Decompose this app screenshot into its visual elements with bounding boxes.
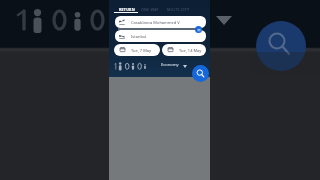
staticText: Tue, 7 May (131, 48, 152, 53)
staticText: MULTI-CITY (167, 7, 190, 12)
button[interactable]: Istanbul (115, 30, 206, 42)
button[interactable]: Tue, 14 May (162, 44, 206, 56)
button[interactable]: MULTI-CITY (167, 7, 190, 12)
button[interactable]: Casablanca Mohammed V (115, 16, 206, 28)
staticText: Economy (161, 62, 179, 68)
button[interactable] (113, 60, 155, 70)
staticText: Istanbul (131, 34, 147, 39)
staticText: Tue, 14 May (179, 48, 202, 53)
button[interactable]: Tue, 7 May (114, 44, 160, 56)
staticText: RETURN (119, 7, 135, 12)
button[interactable]: ONE WAY (141, 7, 159, 12)
button[interactable]: RETURN (119, 7, 143, 12)
staticText: Casablanca Mohammed V (131, 20, 180, 25)
staticText: ONE WAY (141, 7, 159, 12)
button[interactable]: Economy (161, 62, 193, 70)
button[interactable]: Swap origin and destination (195, 26, 202, 33)
button[interactable]: Search flights (192, 65, 209, 82)
